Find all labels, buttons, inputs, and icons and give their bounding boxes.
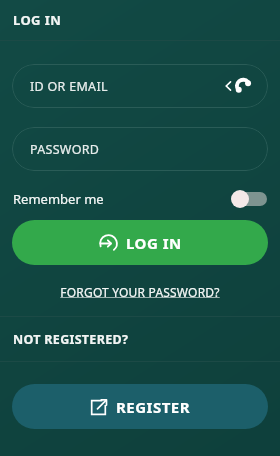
staticText: REGISTER (116, 397, 191, 417)
button[interactable]: REGISTER (12, 384, 268, 429)
staticText: Remember me (13, 190, 231, 208)
staticText: LOG IN (13, 11, 62, 29)
button[interactable]: Remember me toggle (231, 190, 267, 208)
button[interactable]: Use phone number (220, 74, 254, 98)
button[interactable]: PASSWORD (12, 127, 268, 171)
button[interactable]: LOG IN (12, 220, 268, 265)
staticText: FORGOT YOUR PASSWORD? (60, 284, 220, 300)
staticText: NOT REGISTERED? (13, 331, 129, 348)
button[interactable]: ID OR EMAIL (12, 64, 268, 108)
staticText: LOG IN (126, 233, 182, 253)
staticText: ID OR EMAIL (30, 78, 220, 95)
button[interactable]: FORGOT YOUR PASSWORD? (0, 280, 280, 304)
button[interactable]: Remember me (0, 184, 280, 214)
staticText: PASSWORD (30, 141, 100, 158)
